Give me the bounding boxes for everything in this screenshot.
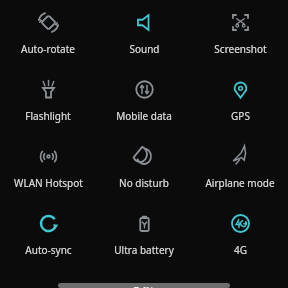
- staticText: No disturb: [119, 176, 169, 190]
- staticText: Ultra battery: [114, 243, 174, 257]
- staticText: Airplane mode: [205, 176, 275, 190]
- staticText: Flashlight: [25, 109, 71, 123]
- staticText: GPS: [231, 109, 250, 123]
- staticText: Auto-rotate: [21, 42, 75, 56]
- staticText: Sound: [129, 42, 160, 56]
- button[interactable]: GPS: [192, 70, 288, 137]
- staticText: Edit: [133, 283, 155, 288]
- button[interactable]: Edit: [58, 283, 230, 288]
- button[interactable]: Auto-sync: [0, 204, 96, 271]
- staticText: Screenshot: [214, 42, 267, 56]
- button[interactable]: Airplane mode: [192, 137, 288, 204]
- staticText: Auto-sync: [25, 243, 72, 257]
- button[interactable]: WLAN Hotspot: [0, 137, 96, 204]
- button[interactable]: No disturb: [96, 137, 192, 204]
- button[interactable]: Auto-rotate: [0, 3, 96, 70]
- button[interactable]: 4G: [192, 204, 288, 271]
- button[interactable]: Sound: [96, 3, 192, 70]
- staticText: WLAN Hotspot: [14, 176, 83, 190]
- button[interactable]: Ultra battery: [96, 204, 192, 271]
- button[interactable]: Screenshot: [192, 3, 288, 70]
- staticText: Mobile data: [116, 109, 172, 123]
- button[interactable]: Flashlight: [0, 70, 96, 137]
- button[interactable]: Mobile data: [96, 70, 192, 137]
- staticText: 4G: [234, 243, 247, 257]
